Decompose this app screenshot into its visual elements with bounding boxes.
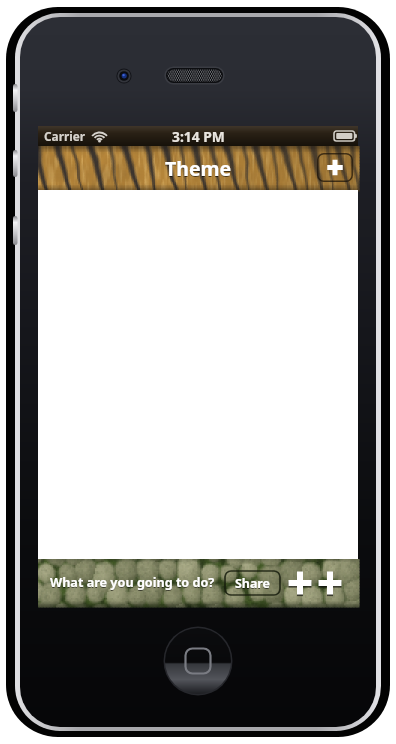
- button[interactable]: Add: [287, 570, 313, 596]
- button[interactable]: Share: [224, 570, 281, 596]
- staticText: Carrier: [44, 128, 86, 144]
- staticText: 3:14 PM: [172, 127, 225, 146]
- staticText: What are you going to do?: [50, 575, 215, 592]
- button[interactable]: Add theme: [317, 153, 353, 182]
- staticText: Theme: [165, 156, 232, 183]
- button[interactable]: Add another: [317, 570, 343, 596]
- staticText: Theme: [165, 155, 232, 182]
- staticText: Share: [235, 576, 270, 593]
- staticText: Share: [235, 575, 270, 592]
- staticText: What are you going to do?: [50, 574, 215, 591]
